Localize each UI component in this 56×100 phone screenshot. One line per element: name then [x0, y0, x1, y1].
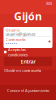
staticText: usuario@gijon.es	[5, 31, 35, 37]
staticText: Entrar	[20, 58, 35, 65]
button[interactable]: Conoce el Ayuntamiento	[0, 88, 56, 93]
staticText: Acepto las condiciones	[8, 47, 28, 57]
button[interactable]: Olvidé mi contraseña	[0, 68, 56, 73]
staticText: Conoce el Ayuntamiento	[7, 88, 49, 93]
staticText: Contraseña	[5, 37, 25, 42]
button[interactable]: Entrar	[4, 57, 52, 66]
staticText: ▮▮▮	[46, 1, 52, 5]
staticText: ••••••	[5, 41, 17, 46]
staticText: Gijón	[14, 9, 42, 23]
staticText: Usuario	[5, 27, 19, 33]
staticText: Olvidé mi contraseña	[4, 68, 41, 73]
